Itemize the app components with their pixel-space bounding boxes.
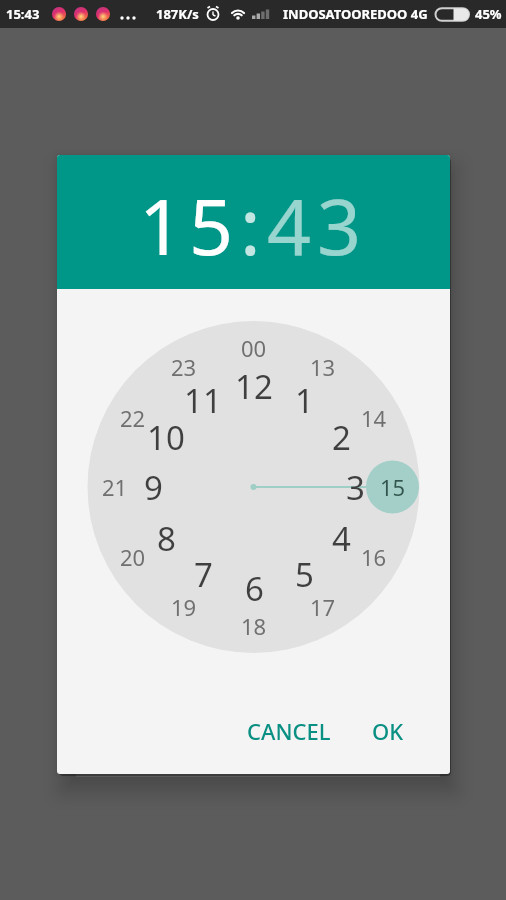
staticText: 23 [171,352,197,382]
staticText: 9 [144,465,163,509]
staticText: 21 [102,472,128,502]
button[interactable]: 1 [282,378,326,422]
button[interactable]: 20 [111,535,155,579]
button[interactable]: 17 [301,585,345,629]
button[interactable]: 23 [162,345,206,389]
staticText: 6 [245,566,264,610]
staticText: 7 [194,552,213,596]
button[interactable]: 7 [181,552,225,596]
button[interactable]: 3 [333,465,377,509]
button[interactable]: 13 [301,345,345,389]
button[interactable]: OK [352,709,424,753]
button[interactable]: 2 [319,415,363,459]
button[interactable]: 21 [93,465,137,509]
button[interactable]: 5 [282,552,326,596]
staticText: 18 [241,611,267,641]
staticText: 22 [120,403,146,433]
staticText: 12 [235,364,273,408]
button[interactable]: 16 [352,535,396,579]
button[interactable]: 11 [181,378,225,422]
staticText: OK [372,716,404,746]
staticText: 43 [267,173,368,278]
staticText: INDOSATOOREDOO 4G [283,5,428,23]
button[interactable]: 8 [144,516,188,560]
button[interactable]: 15 [371,465,415,509]
button[interactable]: 4 [319,516,363,560]
staticText: CANCEL [247,716,331,746]
button[interactable]: 14 [352,396,396,440]
staticText: 10 [147,415,185,459]
staticText: 4 [332,516,351,560]
staticText: 19 [171,592,197,622]
button[interactable]: 6 [232,566,276,610]
button[interactable]: 12 [232,364,276,408]
staticText: 15:43 [6,5,40,23]
staticText: 20 [120,542,146,572]
staticText: 15 [380,472,406,502]
staticText: 1 [295,378,314,422]
button[interactable]: 10 [144,415,188,459]
staticText: 14 [361,403,387,433]
button[interactable]: 19 [162,585,206,629]
staticText: : [240,173,267,278]
staticText: 2 [332,415,351,459]
staticText: 15 [139,173,240,278]
staticText: 17 [310,592,336,622]
staticText: 45% [475,5,502,23]
button[interactable]: 9 [131,465,175,509]
staticText: 13 [310,352,336,382]
button[interactable]: CANCEL [231,709,347,753]
staticText: 8 [157,516,176,560]
button[interactable]: 22 [111,396,155,440]
staticText: 16 [361,542,387,572]
staticText: 3 [346,465,365,509]
staticText: 11 [184,378,222,422]
staticText: 187K/s [156,5,199,23]
button[interactable]: 18 [232,604,276,648]
staticText: 5 [295,552,314,596]
button[interactable]: 00 [232,326,276,370]
staticText: 00 [241,333,267,363]
